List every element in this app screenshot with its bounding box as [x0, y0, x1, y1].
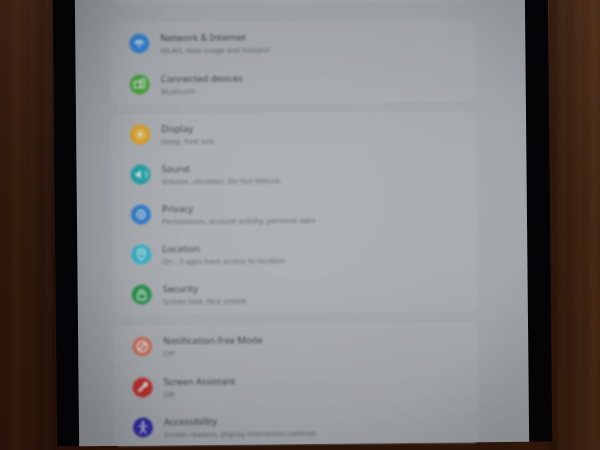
button[interactable]: Accessibility	[114, 404, 479, 448]
button[interactable]: Connected devices	[110, 60, 476, 105]
button[interactable]: Notification-free Mode	[113, 322, 478, 367]
staticText: Sleep, font size	[161, 136, 214, 146]
staticText: Notification-free Mode	[163, 333, 263, 347]
button[interactable]: Privacy	[112, 191, 477, 235]
staticText: Security	[163, 282, 199, 295]
button[interactable]: Network & Internet	[110, 19, 475, 64]
button[interactable]: Sound	[111, 151, 477, 195]
staticText: Screen readers, display interaction cont…	[164, 428, 316, 439]
button[interactable]: Screen Assistant	[113, 363, 479, 408]
staticText: Sound	[161, 162, 190, 175]
staticText: Display	[161, 122, 194, 135]
button[interactable]: Security	[112, 271, 478, 315]
staticText: Connected devices	[161, 71, 244, 85]
staticText: Location	[162, 242, 200, 255]
staticText: Permissions, account activity, personal …	[162, 215, 316, 226]
staticText: Privacy	[162, 202, 194, 215]
staticText: Volume, vibration, Do Not Disturb	[162, 175, 281, 186]
staticText: WLAN, data usage and hotspot	[160, 44, 270, 55]
button[interactable]: Location	[112, 231, 477, 275]
button[interactable]: Display	[111, 111, 476, 155]
staticText: Screen Assistant	[163, 375, 236, 388]
staticText: Network & Internet	[160, 30, 246, 44]
staticText: Bluetooth	[161, 86, 196, 96]
staticText: Screen lock, face unlock	[163, 295, 247, 306]
staticText: Off	[163, 348, 175, 358]
staticText: Accessibility	[164, 415, 217, 428]
staticText: On - 3 apps have access to location	[162, 255, 285, 266]
staticText: Off	[164, 389, 176, 399]
button[interactable]: Accounts	[109, 0, 475, 5]
